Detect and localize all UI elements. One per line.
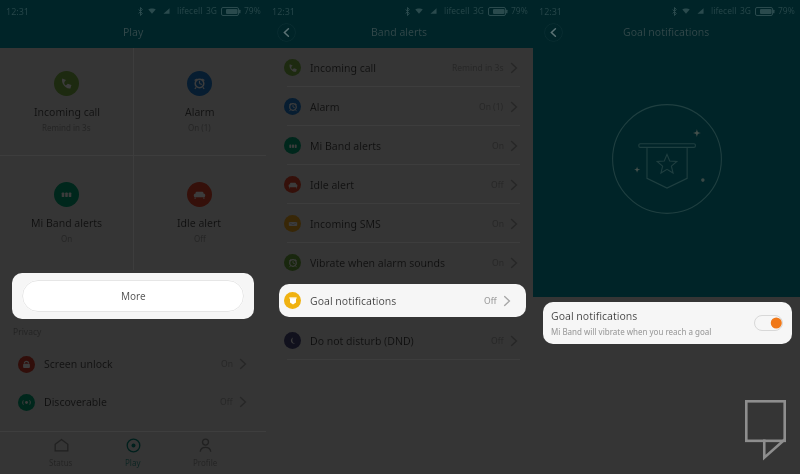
staticText: Off [484, 295, 497, 307]
staticText: 79% [778, 5, 795, 17]
staticText: Play [125, 457, 141, 468]
button[interactable]: Screen unlock [0, 345, 266, 383]
button[interactable]: Back [544, 23, 563, 42]
button[interactable]: Incoming call [266, 48, 533, 87]
staticText: On [492, 218, 504, 230]
staticText: 12:31 [272, 5, 296, 17]
staticText: Alarm [310, 100, 340, 114]
button[interactable]: Back [277, 23, 296, 42]
staticText: Privacy [13, 326, 42, 338]
staticText: Mi Band alerts [310, 139, 382, 153]
staticText: lifecell [444, 5, 470, 17]
button[interactable]: Alarm [266, 87, 533, 126]
staticText: Status [49, 457, 73, 468]
button[interactable]: Goal notifications [543, 302, 792, 344]
staticText: On [221, 358, 233, 370]
button[interactable]: Alarm [133, 48, 266, 155]
staticText: Profile [193, 457, 218, 468]
other: Logo [745, 400, 786, 459]
staticText: Off [194, 233, 206, 244]
button[interactable]: Mi Band alerts [266, 126, 533, 165]
staticText: 79% [244, 5, 261, 17]
staticText: Do not disturb (DND) [310, 334, 414, 348]
staticText: Goal notifications [310, 294, 397, 308]
staticText: Discoverable [44, 395, 107, 409]
button[interactable]: Play [97, 432, 169, 474]
staticText: Incoming call [310, 61, 376, 75]
staticText: Mi Band will vibrate when you reach a go… [551, 326, 712, 337]
button[interactable]: Incoming SMS [266, 204, 533, 243]
button[interactable]: Goal notifications [279, 284, 526, 317]
staticText: Incoming SMS [310, 217, 381, 231]
staticText: Band alerts [371, 25, 428, 39]
staticText: On [61, 233, 73, 244]
staticText: Goal notifications [623, 25, 710, 39]
button[interactable]: Discoverable [0, 383, 266, 421]
staticText: Remind in 3s [42, 122, 91, 133]
staticText: Off [491, 335, 504, 347]
staticText: 3G [206, 5, 218, 17]
button[interactable]: Goal notifications toggle [754, 315, 783, 331]
staticText: Idle alert [177, 216, 222, 230]
button[interactable]: More [22, 280, 244, 312]
staticText: Mi Band alerts [31, 216, 103, 230]
staticText: Incoming call [34, 105, 100, 119]
staticText: On [492, 140, 504, 152]
staticText: 12:31 [539, 5, 563, 17]
staticText: Play [123, 25, 144, 39]
staticText: On (1) [188, 122, 211, 133]
staticText: lifecell [177, 5, 203, 17]
staticText: On (1) [479, 101, 504, 113]
staticText: Remind in 3s [452, 62, 504, 74]
staticText: 3G [740, 5, 752, 17]
staticText: Off [491, 179, 504, 191]
button[interactable]: Mi Band alerts [0, 156, 133, 270]
staticText: 79% [511, 5, 528, 17]
staticText: 12:31 [6, 5, 30, 17]
staticText: Goal notifications [551, 309, 638, 323]
staticText: Idle alert [310, 178, 355, 192]
button[interactable]: Idle alert [133, 156, 266, 270]
button[interactable]: Vibrate when alarm sounds [266, 243, 533, 282]
button[interactable]: Do not disturb (DND) [266, 321, 533, 360]
staticText: Vibrate when alarm sounds [310, 256, 446, 270]
staticText: On [492, 257, 504, 269]
staticText: Alarm [185, 105, 215, 119]
staticText: Screen unlock [44, 357, 113, 371]
staticText: Off [220, 396, 233, 408]
staticText: 3G [473, 5, 485, 17]
button[interactable]: Incoming call [0, 48, 133, 155]
staticText: More [121, 289, 146, 303]
button[interactable]: Idle alert [266, 165, 533, 204]
staticText: lifecell [711, 5, 737, 17]
